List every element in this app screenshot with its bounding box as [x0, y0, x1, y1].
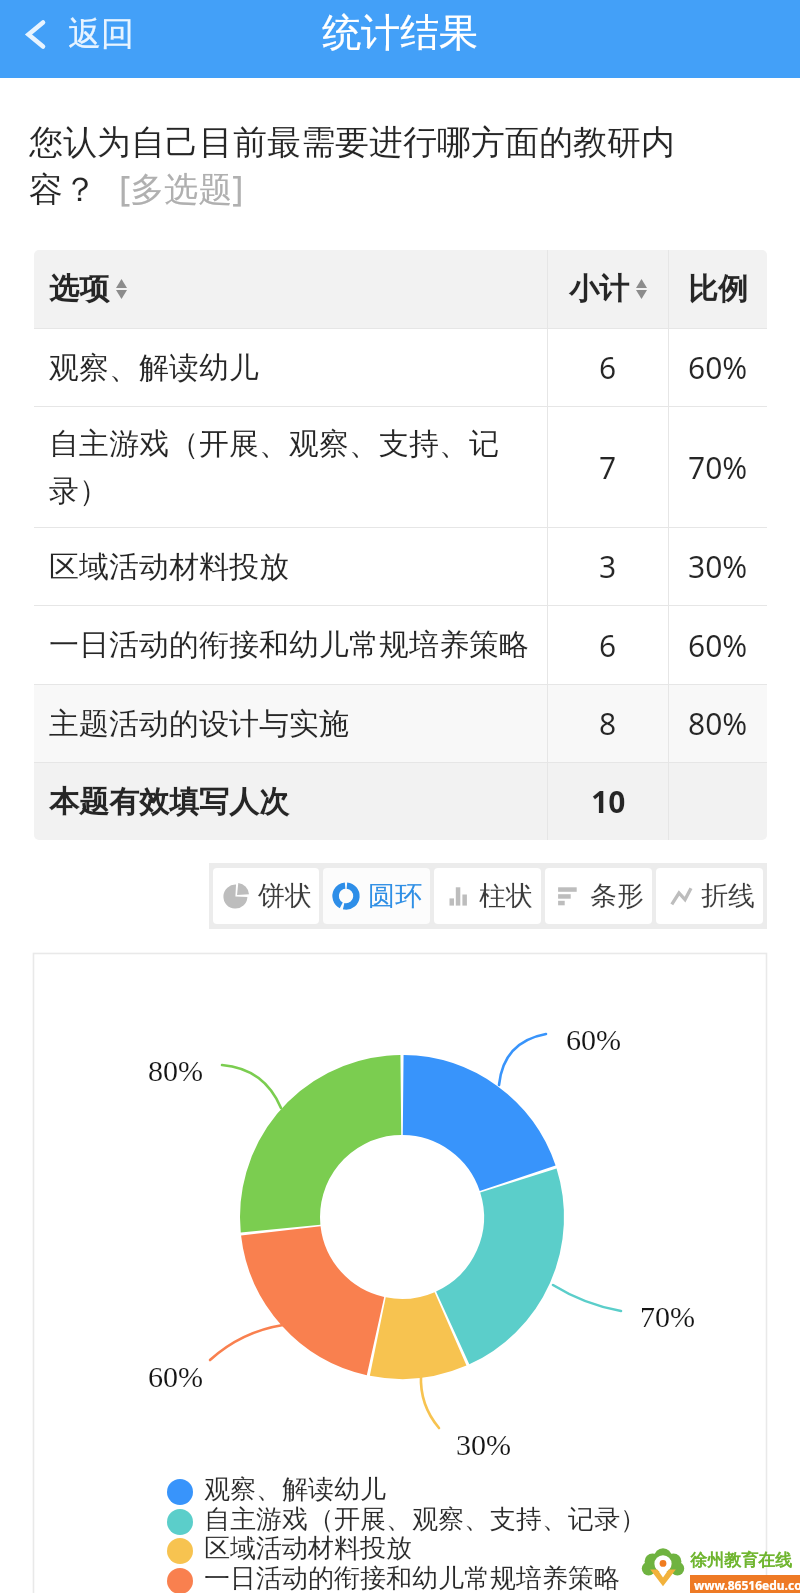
staticText: 饼状 [258, 879, 312, 913]
staticText: 70% [688, 447, 748, 488]
staticText: 10 [591, 781, 626, 822]
staticText: 折线 [701, 879, 755, 913]
staticText: 60% [148, 1360, 203, 1393]
staticText: 比例 [688, 270, 748, 308]
staticText: 本题有效填写人次 [49, 783, 289, 821]
staticText: 选项 [49, 270, 109, 308]
staticText: 3 [599, 546, 617, 587]
staticText: 80% [688, 703, 748, 744]
staticText: 60% [688, 625, 748, 666]
staticText: 60% [566, 1023, 621, 1056]
staticText: 观察、解读幼儿 [204, 1473, 386, 1506]
staticText: 徐州教育在线 [690, 1550, 792, 1571]
staticText: 区域活动材料投放 [49, 548, 289, 586]
button[interactable]: 折线 [656, 868, 763, 924]
staticText: 自主游戏（开展、观察、支持、记 [49, 425, 499, 463]
staticText: www.86516edu.com [694, 1577, 800, 1593]
staticText: 小计 [569, 270, 629, 308]
staticText: 8 [599, 703, 617, 744]
staticText: 录） [49, 472, 109, 510]
staticText: 自主游戏（开展、观察、支持、记录） [204, 1503, 646, 1536]
staticText: 主题活动的设计与实施 [49, 705, 349, 743]
staticText: 条形 [590, 879, 644, 913]
staticText: 统计结果 [322, 8, 478, 57]
staticText: 您认为自己目前最需要进行哪方面的教研内 [29, 121, 675, 164]
staticText: 一日活动的衔接和幼儿常规培养策略 [204, 1562, 620, 1593]
staticText: 80% [148, 1054, 203, 1087]
staticText: 返回 [68, 13, 134, 55]
staticText: 70% [640, 1300, 695, 1333]
button[interactable]: Back [0, 3, 152, 65]
staticText: 7 [599, 447, 617, 488]
button[interactable]: 圆环 [323, 868, 430, 924]
button[interactable]: 条形 [545, 868, 652, 924]
staticText: 30% [456, 1428, 511, 1461]
staticText: 60% [688, 347, 748, 388]
staticText: 30% [688, 546, 748, 587]
staticText: 区域活动材料投放 [204, 1532, 412, 1565]
staticText: [多选题] [119, 165, 244, 211]
staticText: 圆环 [368, 879, 422, 913]
button[interactable]: 柱状 [434, 868, 541, 924]
staticText: 容？ [29, 168, 97, 211]
staticText: 观察、解读幼儿 [49, 349, 259, 387]
staticText: 柱状 [479, 879, 533, 913]
staticText: 6 [599, 625, 617, 666]
button[interactable]: 饼状 [213, 868, 319, 924]
staticText: 一日活动的衔接和幼儿常规培养策略 [49, 626, 529, 664]
staticText: 6 [599, 347, 617, 388]
